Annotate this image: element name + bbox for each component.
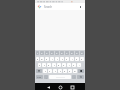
button[interactable]: w <box>40 57 44 61</box>
button[interactable]: o <box>75 57 79 61</box>
button[interactable]: k <box>72 63 76 67</box>
button[interactable]: 3 <box>45 51 49 55</box>
button[interactable]: 9 <box>75 51 79 55</box>
button[interactable]: n <box>68 69 72 73</box>
button[interactable]: a <box>38 63 41 67</box>
staticText: 3 <box>46 52 48 55</box>
staticText: v <box>60 70 61 73</box>
staticText: 7 <box>66 52 68 55</box>
button[interactable]: z <box>43 69 47 73</box>
staticText: m <box>74 70 76 73</box>
button[interactable]: i <box>70 57 74 61</box>
button[interactable]: q <box>36 57 39 61</box>
staticText: p <box>81 58 83 61</box>
button[interactable]: t <box>55 57 59 61</box>
button[interactable]: r <box>50 57 54 61</box>
staticText: 5 <box>56 52 58 55</box>
staticText: x <box>49 70 51 73</box>
button[interactable]: x <box>48 69 52 73</box>
button[interactable]: 2 <box>40 51 44 55</box>
staticText: g <box>58 64 60 67</box>
button[interactable]: Shift <box>36 69 42 73</box>
button[interactable]: e <box>45 57 49 61</box>
button[interactable]: y <box>60 57 64 61</box>
staticText: 9 <box>76 52 78 55</box>
button[interactable]: Recent apps <box>69 84 75 90</box>
button[interactable]: g <box>57 63 61 67</box>
button[interactable]: Home <box>57 84 63 90</box>
staticText: 4 <box>51 52 53 55</box>
staticText: d <box>48 64 50 67</box>
staticText: k <box>73 64 75 67</box>
button[interactable]: 8 <box>70 51 74 55</box>
button[interactable]: l <box>77 63 81 67</box>
button[interactable]: Search <box>35 3 85 10</box>
button[interactable]: d <box>47 63 51 67</box>
staticText: Search <box>44 5 53 9</box>
staticText: 6 <box>61 52 63 55</box>
staticText: l <box>79 64 80 67</box>
button[interactable]: 7 <box>65 51 69 55</box>
button[interactable]: 1 <box>36 51 39 55</box>
staticText: h <box>63 64 65 67</box>
button[interactable]: Space <box>49 75 71 79</box>
button[interactable]: Backspace <box>78 69 84 73</box>
staticText: r <box>52 58 53 61</box>
staticText: w <box>41 58 43 61</box>
staticText: , <box>46 76 47 79</box>
staticText: s <box>44 64 45 67</box>
button[interactable]: s <box>42 63 46 67</box>
button[interactable]: m <box>73 69 77 73</box>
button[interactable]: v <box>58 69 62 73</box>
staticText: 2 <box>41 52 43 55</box>
staticText: c <box>55 70 56 73</box>
staticText: u <box>66 58 68 61</box>
staticText: n <box>69 70 71 73</box>
button[interactable]: c <box>53 69 57 73</box>
staticText: t <box>57 58 58 61</box>
staticText: 1 <box>37 52 39 55</box>
staticText: a <box>39 64 41 67</box>
button[interactable]: 5 <box>55 51 59 55</box>
staticText: o <box>76 58 78 61</box>
button[interactable]: More options <box>78 5 82 9</box>
staticText: i <box>72 58 73 61</box>
staticText: b <box>64 70 66 73</box>
staticText: y <box>62 58 63 61</box>
button[interactable]: p <box>80 57 84 61</box>
button[interactable]: 6 <box>60 51 64 55</box>
staticText: j <box>69 64 70 67</box>
staticText: e <box>46 58 48 61</box>
button[interactable]: 4 <box>50 51 54 55</box>
staticText: ?123 <box>37 76 42 79</box>
staticText: z <box>45 70 46 73</box>
button[interactable]: 0 <box>80 51 84 55</box>
staticText: f <box>54 64 55 67</box>
button[interactable]: u <box>65 57 69 61</box>
button[interactable]: h <box>62 63 66 67</box>
button[interactable]: Search <box>77 75 84 79</box>
staticText: 0 <box>81 52 83 55</box>
button[interactable]: ?123 <box>36 75 43 79</box>
staticText: 8 <box>71 52 73 55</box>
button[interactable]: Back <box>45 84 51 90</box>
button[interactable]: b <box>63 69 67 73</box>
button[interactable]: j <box>67 63 71 67</box>
staticText: q <box>37 58 39 61</box>
button[interactable]: f <box>52 63 56 67</box>
